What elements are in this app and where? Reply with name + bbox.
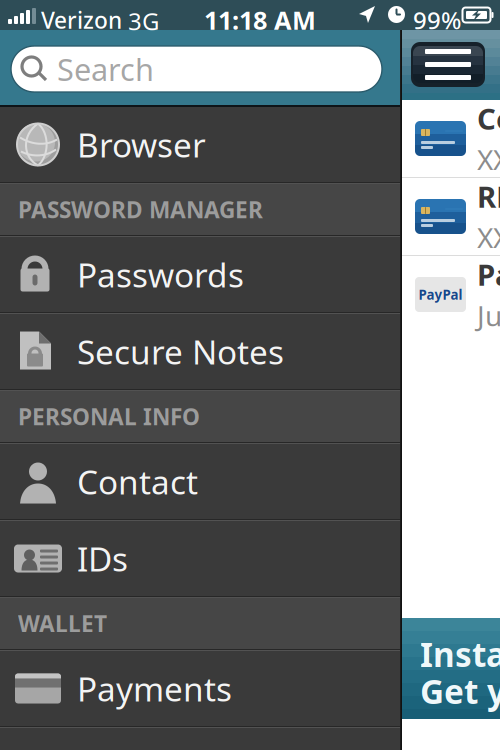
staticText: REI Visa — [477, 177, 500, 216]
staticText: Payments — [77, 666, 232, 711]
staticText: Get your stuff — [420, 669, 500, 713]
button[interactable]: REI Visa — [402, 178, 500, 255]
staticText: Secure Notes — [77, 329, 284, 374]
staticText: Passwords — [77, 252, 244, 297]
staticText: PayPal — [418, 286, 462, 303]
staticText: Verizon — [41, 5, 122, 35]
staticText: Paypal — [477, 255, 500, 294]
button[interactable]: Corporate Card — [402, 100, 500, 177]
button[interactable]: Passwords — [0, 237, 402, 312]
button[interactable]: Payments — [0, 651, 402, 726]
staticText: 11:18 AM — [204, 3, 316, 37]
button[interactable]: Contact — [0, 444, 402, 519]
button[interactable]: Search — [11, 46, 382, 92]
staticText: Install our app — [420, 632, 500, 676]
staticText: XXXX — [477, 219, 500, 256]
button[interactable]: PayPal — [402, 256, 500, 333]
staticText: 3G — [128, 5, 159, 37]
staticText: Corporate Card — [477, 99, 500, 138]
staticText: Browser — [77, 122, 206, 167]
staticText: IDs — [77, 536, 128, 581]
staticText: Search — [57, 49, 154, 89]
staticText: WALLET — [18, 608, 107, 638]
button[interactable]: Browser — [0, 107, 402, 182]
staticText: 99% — [413, 4, 461, 36]
staticText: July — [477, 297, 500, 334]
staticText: Contact — [77, 459, 198, 504]
button[interactable]: Menu — [411, 42, 485, 87]
button[interactable]: Secure Notes — [0, 314, 402, 389]
button[interactable]: IDs — [0, 521, 402, 596]
staticText: PERSONAL INFO — [18, 401, 200, 431]
staticText: PASSWORD MANAGER — [18, 194, 263, 224]
staticText: XXXX — [477, 141, 500, 178]
